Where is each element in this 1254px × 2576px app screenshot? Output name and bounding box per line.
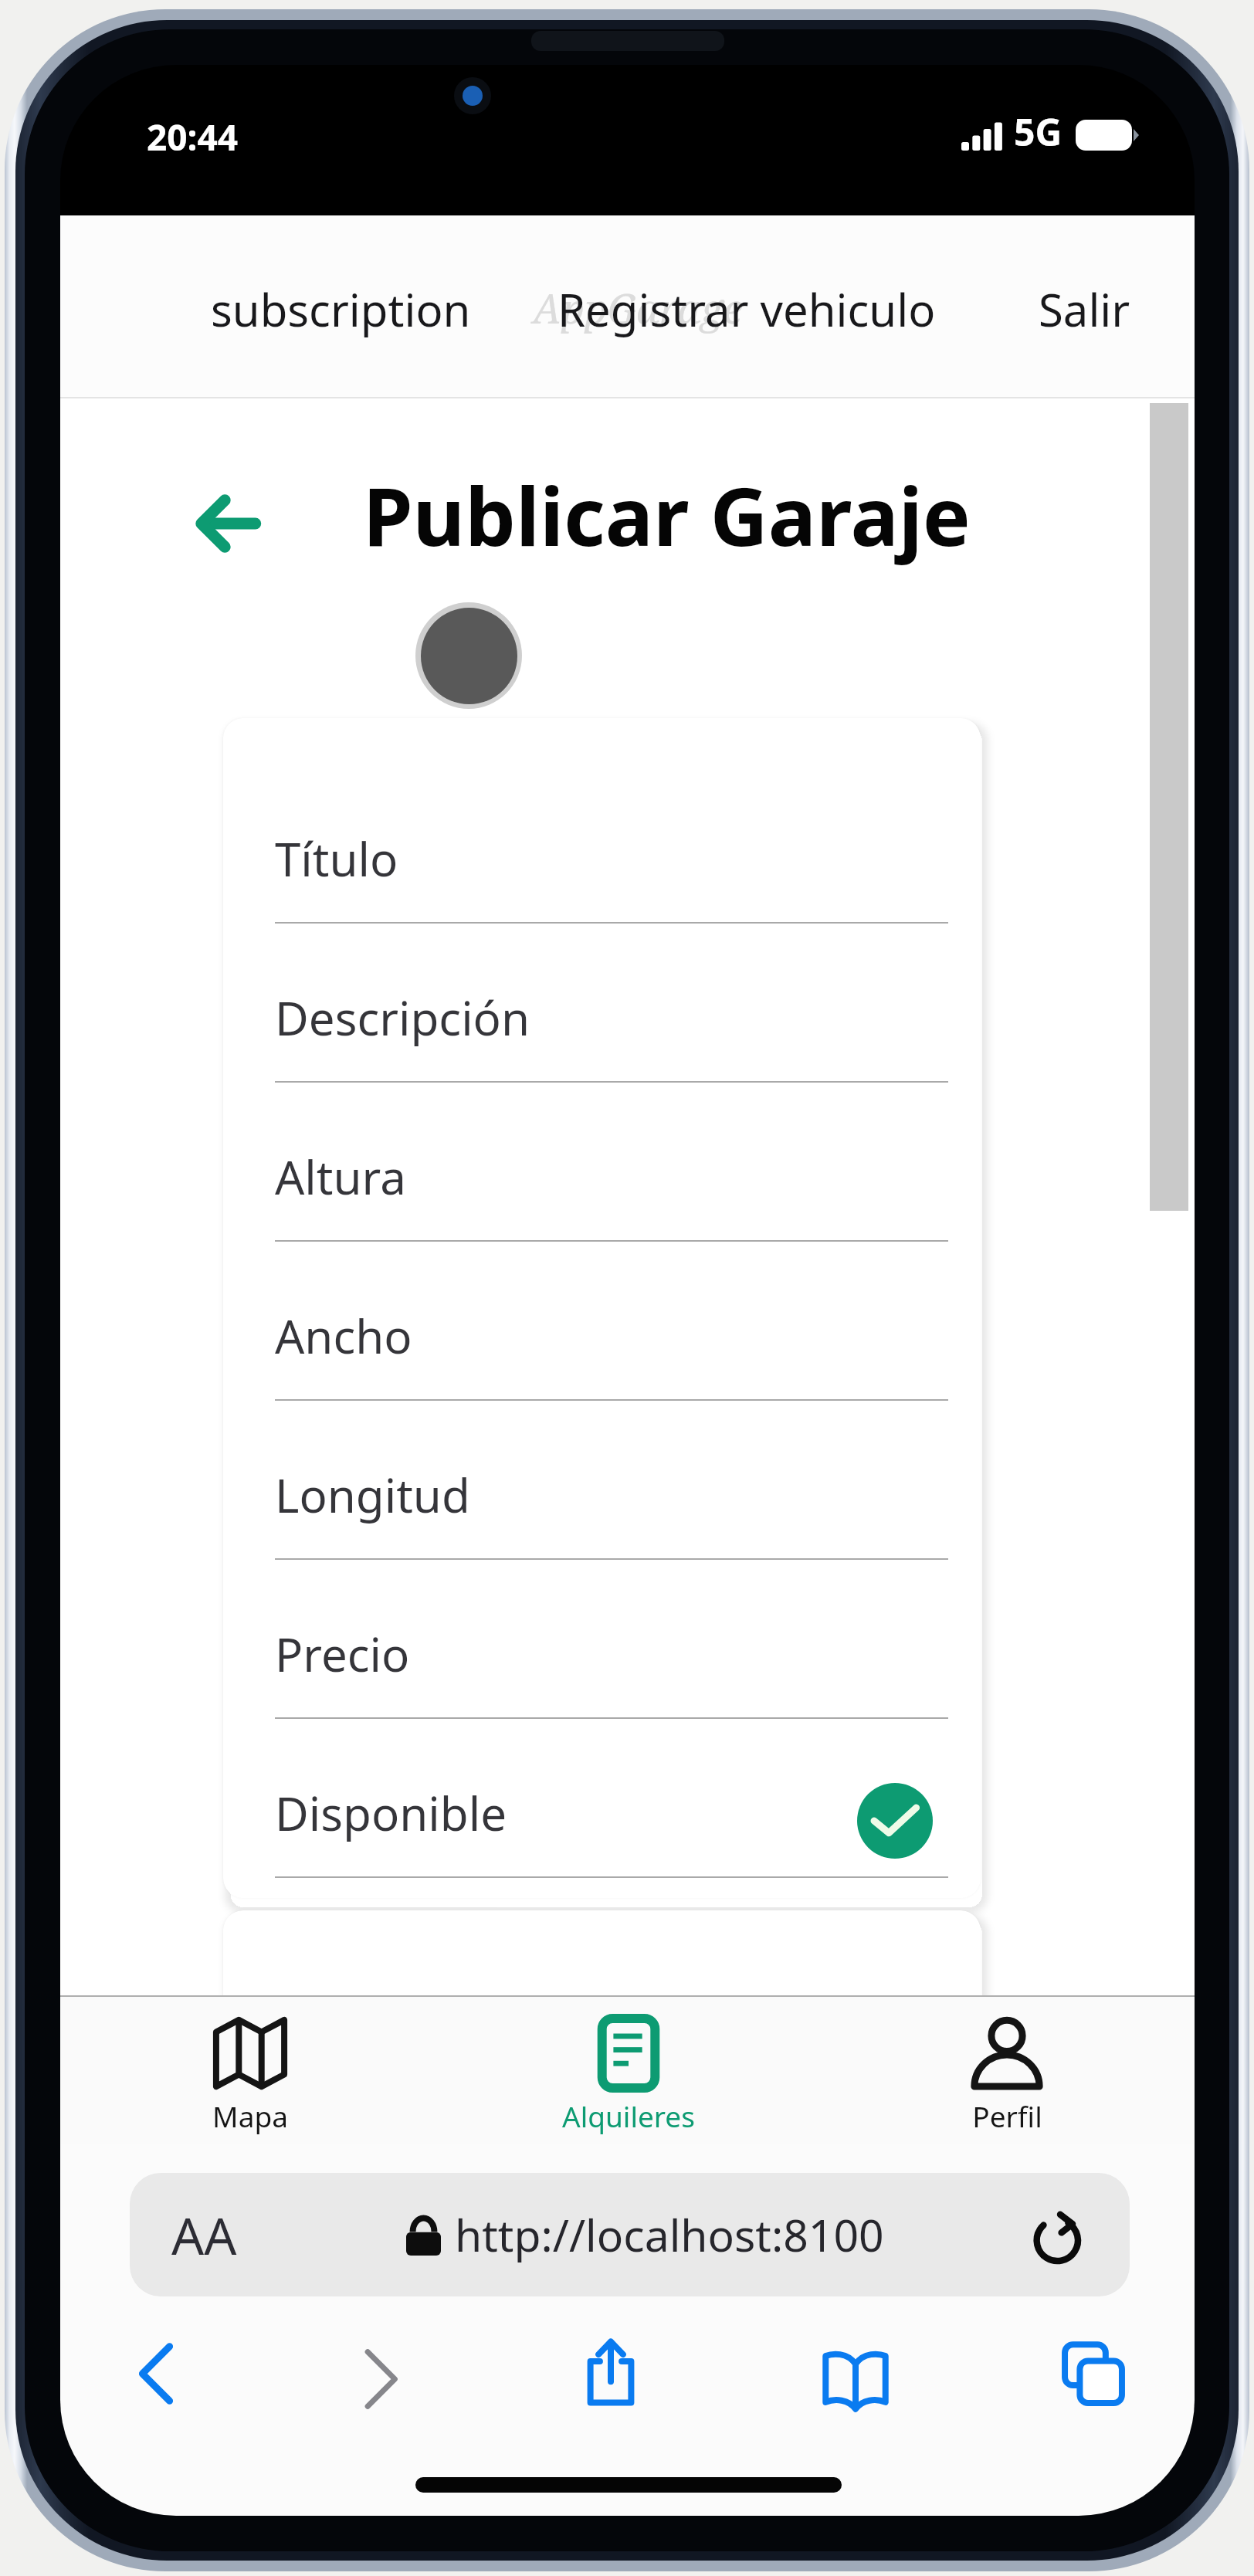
button[interactable]: Back [169,465,286,582]
staticText: Alquileres [562,2096,695,2135]
button[interactable]: Ancho [275,1242,948,1401]
button[interactable]: Forward [330,2330,429,2429]
staticText: Título [275,827,398,890]
staticText: Precio [275,1622,410,1686]
staticText: Disponible [275,1781,507,1845]
staticText: Publicar Garaje [363,460,971,570]
button[interactable]: Altura [275,1083,948,1242]
button[interactable]: Mapa [158,2015,343,2135]
button[interactable]: Descripción [275,924,948,1083]
staticText: Altura [275,1145,406,1208]
button[interactable]: Salir [1020,260,1149,358]
staticText: AA [171,2200,237,2269]
staticText: Registrar vehiculo [558,279,936,340]
button[interactable]: Registrar vehiculo [539,260,954,358]
button[interactable]: Alquileres [536,2015,721,2135]
button[interactable]: Back [107,2324,205,2423]
button[interactable]: AA [130,2173,1130,2296]
staticText: 5G [1014,107,1063,157]
button[interactable]: Longitud [275,1401,948,1560]
staticText: AppGarage [533,280,743,335]
button[interactable]: Título [275,764,948,924]
button[interactable]: Disponible [275,1719,948,1878]
button[interactable]: Precio [275,1560,948,1719]
button[interactable]: Tabs [1044,2325,1143,2424]
staticText: Ancho [275,1304,412,1368]
staticText: 20:44 [147,113,239,161]
button[interactable]: Disponible [857,1783,933,1859]
button[interactable]: Reload [1025,2199,1096,2270]
button[interactable]: Perfil [914,2015,1100,2135]
button[interactable]: subscription [192,260,490,358]
staticText: Mapa [212,2096,288,2135]
staticText: Perfil [972,2096,1042,2135]
button[interactable]: Share [561,2323,660,2422]
staticText: http://localhost:8100 [455,2205,884,2265]
staticText: Descripción [275,986,530,1049]
staticText: Salir [1039,279,1130,340]
staticText: subscription [211,279,471,340]
staticText: Longitud [275,1463,470,1527]
button[interactable]: Bookmarks [806,2330,905,2429]
